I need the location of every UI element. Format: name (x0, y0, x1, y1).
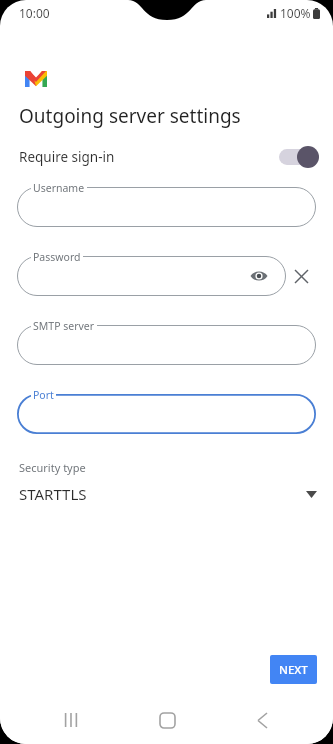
button[interactable] (17, 325, 316, 365)
staticText: Username (33, 181, 85, 195)
staticText: Require sign-in (19, 148, 115, 166)
button[interactable]: Require sign-in toggle (279, 146, 319, 168)
button[interactable] (17, 394, 316, 434)
staticText: SMTP server (33, 319, 95, 333)
button[interactable]: Show password (248, 265, 270, 287)
button[interactable]: Back (238, 696, 286, 744)
staticText: 100% (280, 5, 311, 21)
button[interactable]: Recents (47, 696, 95, 744)
button[interactable]: Home (143, 696, 191, 744)
button[interactable]: Clear (286, 261, 316, 291)
button[interactable]: Require sign-in (0, 141, 333, 173)
staticText: 10:00 (19, 5, 50, 21)
button[interactable]: NEXT (270, 655, 317, 684)
staticText: STARTTLS (19, 484, 87, 504)
button[interactable] (17, 187, 316, 227)
staticText: Security type (19, 460, 86, 475)
button[interactable]: Show password (17, 256, 286, 296)
staticText: Outgoing server settings (19, 103, 241, 129)
button[interactable]: Security type (0, 460, 333, 504)
staticText: NEXT (279, 662, 308, 678)
staticText: Port (33, 388, 54, 402)
staticText: Password (33, 250, 81, 264)
